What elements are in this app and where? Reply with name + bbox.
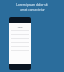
staticText: amet consectetur — [20, 8, 45, 12]
staticText: Lorem ipsum dolor sit — [16, 3, 48, 7]
staticText: Title — [11, 25, 29, 28]
